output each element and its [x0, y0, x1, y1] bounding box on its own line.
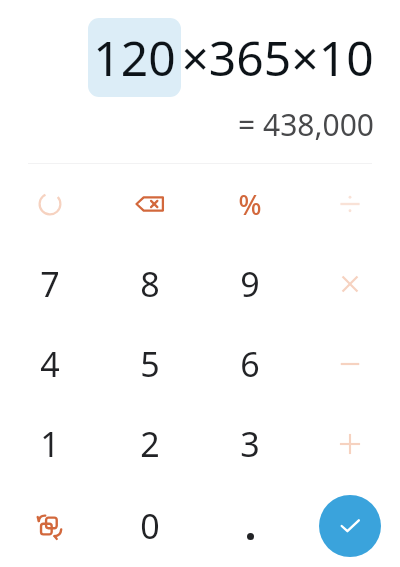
button[interactable]: Divide [300, 164, 400, 244]
staticText: 7 [40, 261, 60, 307]
button[interactable]: 5 [100, 324, 200, 404]
button[interactable]: 9 [200, 244, 300, 324]
staticText: 9 [240, 261, 260, 307]
button[interactable]: 1 [0, 404, 100, 484]
button[interactable]: 2 [100, 404, 200, 484]
button[interactable] [200, 484, 300, 567]
staticText: 4 [40, 341, 60, 387]
staticText: 3 [240, 421, 260, 467]
staticText: 0 [140, 503, 160, 549]
button[interactable]: Convert units [0, 484, 100, 567]
button[interactable]: 120 [88, 18, 181, 97]
button[interactable]: Multiply [300, 244, 400, 324]
button[interactable]: Clear [0, 164, 100, 244]
button[interactable]: Add [300, 404, 400, 484]
staticText: 8 [140, 261, 160, 307]
staticText: = 438,000 [238, 104, 374, 145]
button[interactable]: Equals [319, 495, 381, 557]
staticText: 1 [40, 421, 60, 467]
staticText: 120 [93, 25, 176, 90]
button[interactable]: 3 [200, 404, 300, 484]
button[interactable]: 8 [100, 244, 200, 324]
button[interactable]: Backspace [100, 164, 200, 244]
button[interactable]: % [200, 164, 300, 244]
button[interactable]: 6 [200, 324, 300, 404]
staticText: % [238, 186, 262, 223]
staticText: 2 [140, 421, 160, 467]
button[interactable]: Subtract [300, 324, 400, 404]
staticText: 5 [140, 341, 160, 387]
staticText: 6 [240, 341, 260, 387]
button[interactable]: 0 [100, 484, 200, 567]
button[interactable]: 4 [0, 324, 100, 404]
staticText: ×365×10 [181, 25, 374, 90]
button[interactable]: 7 [0, 244, 100, 324]
